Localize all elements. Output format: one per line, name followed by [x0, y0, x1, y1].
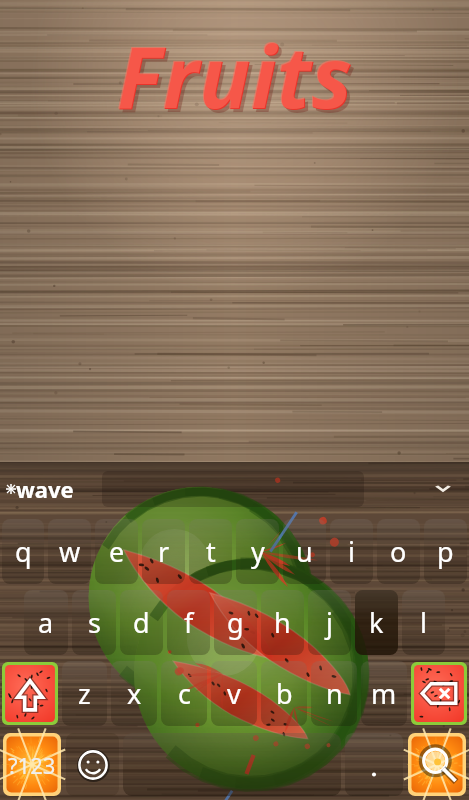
staticText: n	[326, 675, 343, 712]
button[interactable]	[345, 733, 403, 796]
staticText: w	[59, 533, 81, 570]
button[interactable]: r	[142, 519, 185, 584]
button[interactable]: c	[161, 661, 207, 726]
staticText: h	[274, 604, 291, 641]
staticText: q	[15, 533, 32, 570]
button[interactable]: g	[214, 590, 257, 655]
staticText: m	[371, 675, 397, 712]
button[interactable]: d	[120, 590, 163, 655]
button[interactable]: m	[361, 661, 407, 726]
button[interactable]: i	[330, 519, 373, 584]
staticText: t	[206, 533, 216, 570]
button[interactable]: x	[111, 661, 157, 726]
button[interactable]: Space	[123, 733, 341, 796]
button[interactable]: b	[261, 661, 307, 726]
staticText: g	[227, 604, 244, 641]
staticText: e	[109, 533, 125, 570]
button[interactable]: a	[24, 590, 68, 655]
button[interactable]: o	[377, 519, 420, 584]
button[interactable]: Shift	[2, 662, 58, 725]
button[interactable]: Emoji	[66, 733, 119, 796]
button[interactable]: f	[167, 590, 210, 655]
button[interactable]: p	[424, 519, 467, 584]
staticText: wave	[16, 474, 74, 504]
button[interactable]: z	[62, 661, 107, 726]
staticText: b	[276, 675, 293, 712]
staticText: p	[437, 533, 454, 570]
button[interactable]: l	[402, 590, 445, 655]
button[interactable]: j	[308, 590, 351, 655]
button[interactable]: Delete	[411, 662, 467, 725]
button[interactable]: k	[355, 590, 398, 655]
staticText: x	[127, 675, 142, 712]
button[interactable]: Expand suggestions	[417, 462, 469, 516]
staticText: Fruits	[117, 17, 353, 134]
staticText: s	[88, 604, 101, 641]
staticText: l	[420, 604, 427, 641]
button[interactable]: n	[311, 661, 357, 726]
staticText: u	[296, 533, 313, 570]
button[interactable]: w	[48, 519, 91, 584]
staticText: v	[227, 675, 241, 712]
button[interactable]: s	[72, 590, 116, 655]
button[interactable]: e	[95, 519, 138, 584]
staticText: a	[38, 604, 54, 641]
button[interactable]: y	[236, 519, 279, 584]
button[interactable]: q	[2, 519, 44, 584]
staticText: Fruits	[116, 16, 352, 133]
button[interactable]: h	[261, 590, 304, 655]
button[interactable]	[102, 471, 364, 507]
staticText: r	[158, 533, 170, 570]
button[interactable]: t	[189, 519, 232, 584]
staticText: z	[78, 675, 91, 712]
staticText: c	[178, 675, 191, 712]
staticText: j	[326, 604, 333, 641]
staticText: Fruits	[120, 20, 356, 137]
button[interactable]: wave	[0, 462, 96, 516]
staticText: y	[251, 533, 265, 570]
staticText: i	[348, 533, 355, 570]
staticText: f	[184, 604, 194, 641]
button[interactable]: v	[211, 661, 257, 726]
staticText: k	[369, 604, 384, 641]
button[interactable]: Search	[408, 733, 466, 796]
staticText: o	[390, 533, 407, 570]
staticText: d	[133, 604, 150, 641]
staticText: ?123	[8, 750, 56, 780]
button[interactable]: ?123	[3, 733, 61, 796]
button[interactable]: u	[283, 519, 326, 584]
